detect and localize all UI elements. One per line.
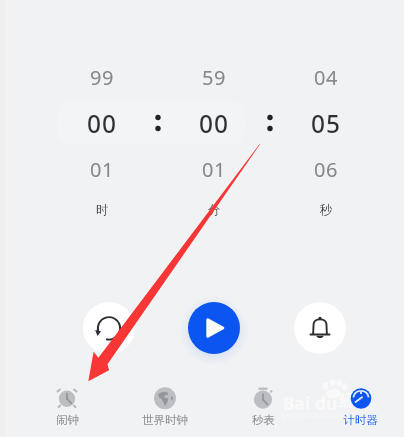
staticText: Bai du [283,392,338,415]
staticText: 04 [314,64,339,91]
button[interactable]: Start timer [188,302,240,354]
button[interactable] [57,56,147,226]
button[interactable] [281,56,371,226]
staticText: 秒表 [252,413,275,427]
staticText: 经验 [339,392,371,412]
staticText: 秒 [320,202,333,218]
staticText: 时 [96,202,109,218]
staticText: 分 [208,202,221,218]
button[interactable]: Reset [83,302,135,354]
staticText: 01 [202,156,227,183]
staticText: 06 [314,156,339,183]
staticText: 05 [311,107,342,140]
button[interactable]: 秒表 [214,380,312,435]
staticText: 闹钟 [56,413,79,427]
staticText: 00 [199,107,230,140]
staticText: 计时器 [343,413,378,427]
button[interactable]: 计时器 [311,380,404,435]
staticText: 00 [87,107,118,140]
staticText: 01 [90,156,115,183]
button[interactable]: Ringtone [294,302,346,354]
staticText: 59 [202,64,227,91]
staticText: 99 [90,64,115,91]
staticText: 世界时钟 [142,413,188,427]
button[interactable]: 世界时钟 [116,380,214,435]
button[interactable]: 闹钟 [18,380,116,435]
button[interactable] [169,56,259,226]
staticText: jingyan.baidu.com [282,409,357,421]
